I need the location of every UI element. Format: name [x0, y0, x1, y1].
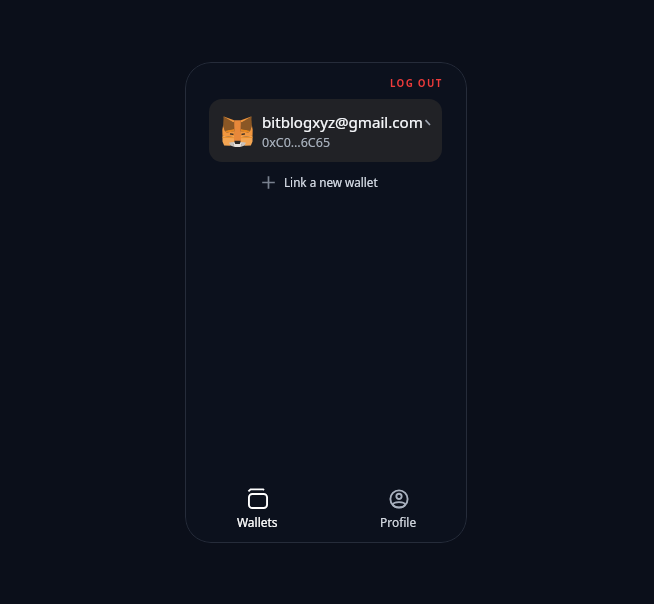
button[interactable]: Profile: [363, 477, 434, 533]
button[interactable]: Link a new wallet: [262, 171, 378, 193]
staticText: Link a new wallet: [284, 174, 378, 190]
button[interactable]: LOG OUT: [384, 71, 449, 96]
staticText: 0xC0…6C65: [262, 134, 331, 151]
staticText: Profile: [380, 514, 417, 530]
staticText: Wallets: [237, 514, 278, 530]
staticText: bitblogxyz@gmail.com: [262, 112, 423, 133]
button[interactable]: bitblogxyz@gmail.com: [209, 99, 442, 162]
button[interactable]: Wallets: [222, 477, 293, 533]
button[interactable]: Expand wallet details: [422, 117, 436, 131]
staticText: LOG OUT: [390, 77, 443, 90]
